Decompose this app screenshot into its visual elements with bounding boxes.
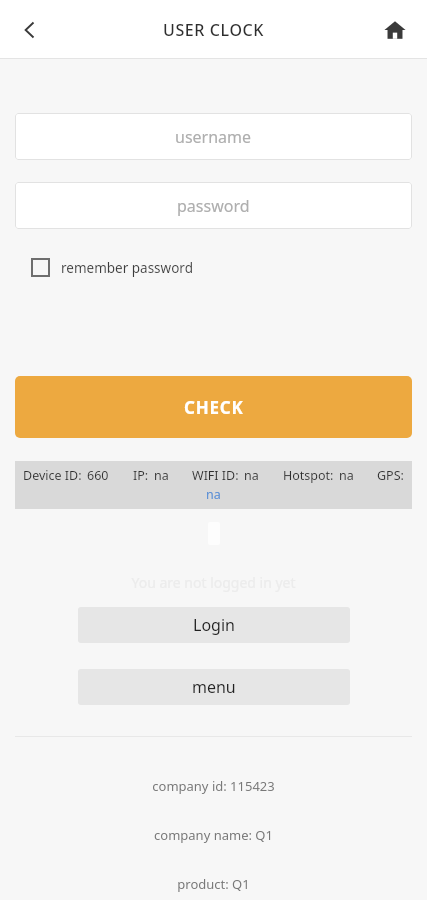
button[interactable]: username xyxy=(15,113,412,160)
staticText: USER CLOCK xyxy=(163,19,264,41)
staticText: product: Q1 xyxy=(0,875,427,893)
staticText: na xyxy=(206,486,221,503)
staticText: 660 xyxy=(87,467,109,484)
staticText: na xyxy=(154,467,169,484)
staticText: Hotspot: xyxy=(283,467,334,484)
staticText: IP: xyxy=(133,467,149,484)
button[interactable]: menu xyxy=(78,669,350,705)
button[interactable]: remember password xyxy=(31,258,193,277)
button[interactable]: Login xyxy=(78,607,350,643)
staticText: GPS: xyxy=(377,467,404,484)
staticText: Device ID: xyxy=(23,467,82,484)
button[interactable]: Back xyxy=(6,6,54,54)
staticText: CHECK xyxy=(184,396,244,419)
staticText: remember password xyxy=(61,259,193,277)
staticText: company name: Q1 xyxy=(0,826,427,844)
staticText: company id: 115423 xyxy=(0,777,427,795)
staticText: WIFI ID: xyxy=(192,467,239,484)
staticText: username xyxy=(175,126,252,148)
staticText: password xyxy=(177,195,250,217)
staticText: na xyxy=(339,467,354,484)
button[interactable]: password xyxy=(15,182,412,229)
staticText: na xyxy=(244,467,259,484)
button[interactable]: CHECK xyxy=(15,376,412,438)
staticText: menu xyxy=(192,676,236,698)
staticText: Login xyxy=(193,614,235,636)
button[interactable]: Home xyxy=(371,6,419,54)
